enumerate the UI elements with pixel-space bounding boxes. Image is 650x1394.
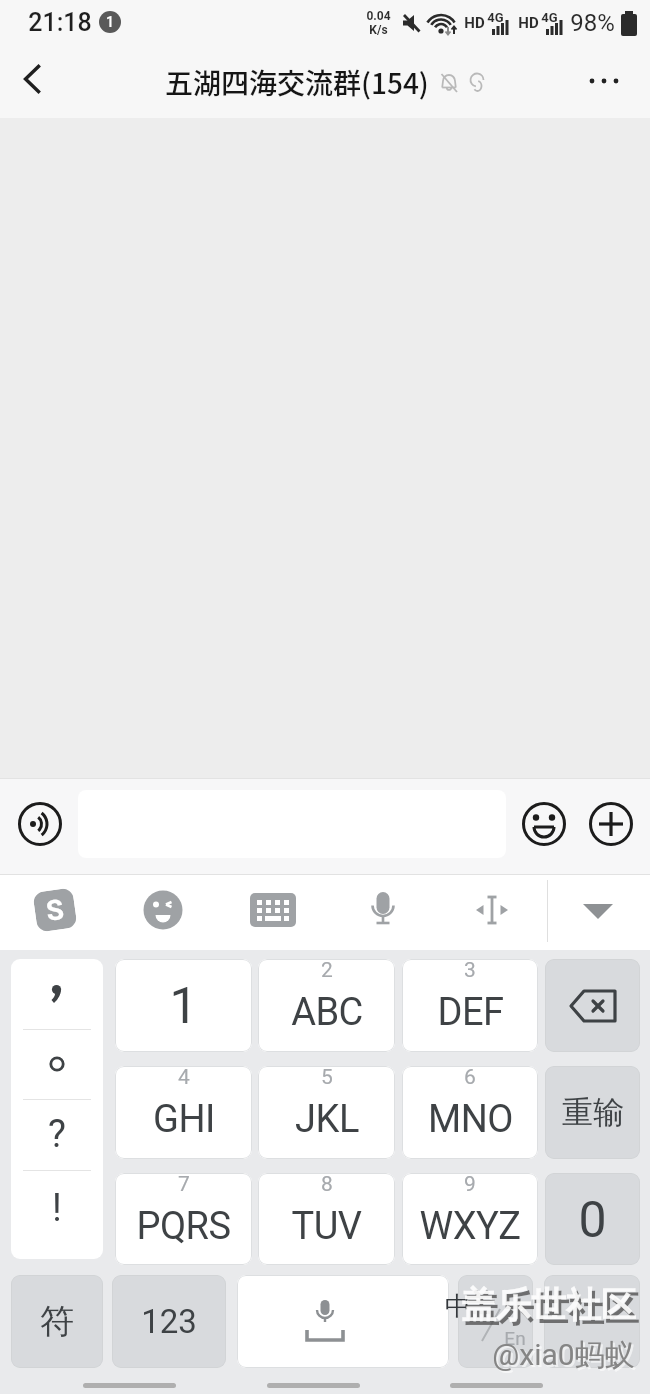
staticText: 1: [106, 14, 114, 30]
staticText: HD: [464, 14, 485, 32]
staticText: @xia0蚂蚁: [492, 1336, 635, 1374]
staticText: !: [52, 1186, 62, 1231]
button[interactable]: [267, 1383, 360, 1388]
button[interactable]: 1: [115, 959, 252, 1052]
staticText: 五湖四海交流群(154): [165, 62, 429, 103]
staticText: 5: [321, 1066, 333, 1090]
button[interactable]: 8: [258, 1173, 395, 1265]
button[interactable]: 6: [402, 1066, 538, 1159]
button[interactable]: En: [458, 1275, 533, 1368]
button[interactable]: [576, 57, 632, 105]
button[interactable]: [368, 890, 398, 930]
staticText: JKL: [295, 1097, 359, 1142]
button[interactable]: [450, 1383, 543, 1388]
staticText: 21:18: [28, 8, 92, 37]
button[interactable]: [11, 1029, 103, 1099]
button[interactable]: [474, 895, 510, 925]
button[interactable]: [83, 1383, 176, 1388]
button[interactable]: 3: [402, 959, 538, 1052]
staticText: S: [44, 893, 66, 928]
staticText: 2: [321, 959, 333, 983]
button[interactable]: [250, 893, 296, 927]
staticText: DEF: [437, 990, 504, 1035]
staticText: 盖乐世社区: [464, 1287, 639, 1331]
button[interactable]: 2: [258, 959, 395, 1052]
staticText: En: [504, 1327, 526, 1349]
staticText: PQRS: [136, 1204, 231, 1249]
staticText: ?: [48, 1112, 66, 1157]
button[interactable]: [522, 802, 566, 846]
button[interactable]: [11, 959, 103, 1029]
button[interactable]: [8, 55, 56, 103]
staticText: HD: [518, 14, 539, 32]
staticText: 8: [321, 1173, 333, 1197]
staticText: GHI: [153, 1097, 215, 1142]
staticText: 盖乐世社区: [461, 1283, 636, 1327]
staticText: 98%: [570, 9, 615, 37]
button[interactable]: 123: [112, 1275, 226, 1368]
staticText: 重输: [562, 1093, 624, 1132]
staticText: 123: [141, 1302, 197, 1341]
button[interactable]: 9: [402, 1173, 538, 1265]
button[interactable]: 0: [545, 1173, 640, 1265]
staticText: 6: [464, 1066, 476, 1090]
staticText: 9: [464, 1173, 476, 1197]
staticText: 7: [178, 1173, 190, 1197]
staticText: 4G: [487, 10, 504, 25]
staticText: WXYZ: [419, 1204, 521, 1249]
staticText: 3: [464, 959, 476, 983]
staticText: 1: [169, 977, 198, 1036]
staticText: K/s: [369, 23, 388, 37]
staticText: @xia0蚂蚁: [494, 1338, 637, 1376]
staticText: TUV: [291, 1204, 362, 1249]
staticText: 符: [40, 1300, 74, 1343]
button[interactable]: 4: [115, 1066, 252, 1159]
staticText: 0: [578, 1191, 607, 1250]
staticText: 0.04: [366, 9, 391, 23]
staticText: 中: [445, 1290, 471, 1323]
button[interactable]: [545, 959, 640, 1052]
button[interactable]: 7: [115, 1173, 252, 1265]
button[interactable]: 符: [11, 1275, 103, 1368]
button[interactable]: [143, 890, 183, 930]
button[interactable]: [589, 802, 633, 846]
staticText: MNO: [428, 1097, 513, 1142]
button[interactable]: 重输: [545, 1066, 640, 1159]
button[interactable]: !: [11, 1170, 103, 1259]
button[interactable]: [237, 1275, 449, 1368]
button[interactable]: 5: [258, 1066, 395, 1159]
staticText: ABC: [291, 990, 363, 1035]
staticText: 4: [178, 1066, 190, 1090]
button[interactable]: [544, 1275, 640, 1368]
button[interactable]: [582, 903, 614, 921]
button[interactable]: S: [32, 887, 78, 933]
staticText: 4G: [541, 10, 558, 25]
button[interactable]: [18, 802, 62, 846]
button[interactable]: ?: [11, 1099, 103, 1170]
